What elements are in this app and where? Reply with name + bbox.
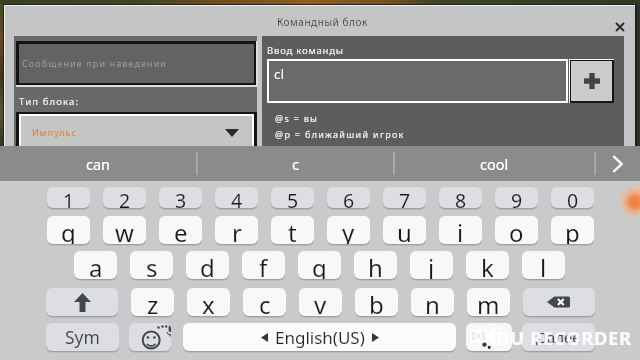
staticText: cool (480, 154, 509, 174)
button[interactable]: b (355, 288, 398, 316)
button[interactable]: l (522, 251, 565, 279)
staticText: k (481, 251, 494, 279)
staticText: Ввод команды (267, 44, 344, 57)
button[interactable]: a (74, 251, 117, 279)
button[interactable]: Backspace (523, 288, 595, 316)
staticText: 5 (287, 187, 299, 208)
button[interactable]: r (215, 216, 258, 244)
button[interactable]: t (271, 216, 314, 244)
button[interactable]: Shift (46, 288, 118, 316)
staticText: 6 (343, 187, 355, 208)
staticText: @s = вы (275, 112, 319, 124)
button[interactable]: u (383, 216, 426, 244)
staticText: g (312, 251, 327, 279)
button[interactable]: w (103, 216, 146, 244)
button[interactable]: i (439, 216, 482, 244)
button[interactable]: 1 (47, 187, 90, 208)
staticText: z (147, 288, 159, 316)
button[interactable]: y (327, 216, 370, 244)
button[interactable]: cool (394, 146, 595, 181)
staticText: DU RECORDER (496, 325, 632, 350)
button[interactable]: . (466, 323, 512, 351)
staticText: n (425, 288, 440, 316)
button[interactable]: English(US) (183, 323, 456, 351)
button[interactable]: q (47, 216, 90, 244)
button[interactable]: 5 (271, 187, 314, 208)
staticText: 4 (231, 187, 243, 208)
staticText: h (368, 251, 383, 279)
button[interactable]: 0 (551, 187, 594, 208)
staticText: q (61, 216, 76, 244)
staticText: can (86, 154, 111, 174)
button[interactable]: c (197, 146, 394, 181)
staticText: 2 (119, 187, 131, 208)
button[interactable]: j (410, 251, 453, 279)
staticText: Импульс (32, 126, 77, 138)
staticText: d (200, 251, 215, 279)
button[interactable]: f (242, 251, 285, 279)
button[interactable]: 3 (159, 187, 202, 208)
button[interactable]: z (131, 288, 174, 316)
staticText: x (202, 288, 215, 316)
button[interactable]: Далее (522, 323, 595, 351)
staticText: b (369, 288, 384, 316)
button[interactable]: m (467, 288, 510, 316)
staticText: 8 (455, 187, 467, 208)
button[interactable]: 7 (383, 187, 426, 208)
staticText: t (288, 216, 297, 244)
staticText: r (232, 216, 242, 244)
button[interactable]: Sym (46, 323, 119, 351)
button[interactable]: More suggestions (595, 146, 640, 181)
button[interactable]: 8 (439, 187, 482, 208)
button[interactable]: Импульс (21, 116, 252, 148)
staticText: s (146, 251, 158, 279)
button[interactable]: Add command (571, 61, 612, 101)
button[interactable]: Close (609, 16, 631, 38)
button[interactable]: 6 (327, 187, 370, 208)
button[interactable]: 9 (495, 187, 538, 208)
button[interactable]: o (495, 216, 538, 244)
staticText: p (565, 216, 580, 244)
staticText: 0 (567, 187, 579, 208)
staticText: 1 (63, 187, 75, 208)
button[interactable]: n (411, 288, 454, 316)
button[interactable]: cl (269, 61, 566, 101)
staticText: m (477, 288, 500, 316)
staticText: Далее (536, 327, 581, 347)
staticText: Sym (65, 325, 100, 349)
button[interactable]: 4 (215, 187, 258, 208)
button[interactable]: Emoji and voice input (129, 323, 171, 351)
staticText: y (342, 216, 355, 244)
staticText: 7 (399, 187, 411, 208)
button[interactable]: h (354, 251, 397, 279)
button[interactable]: can (0, 146, 197, 181)
button[interactable]: e (159, 216, 202, 244)
staticText: f (259, 251, 268, 279)
staticText: . (486, 323, 493, 351)
staticText: a (89, 251, 103, 279)
staticText: 3 (175, 187, 187, 208)
staticText: English(US) (275, 326, 365, 349)
staticText: Тип блока: (19, 95, 80, 108)
staticText: u (397, 216, 412, 244)
button[interactable]: s (130, 251, 173, 279)
staticText: v (314, 288, 327, 316)
button[interactable]: Сообщение при наведении (19, 44, 254, 83)
button[interactable]: d (186, 251, 229, 279)
button[interactable]: 2 (103, 187, 146, 208)
button[interactable]: g (298, 251, 341, 279)
staticText: l (540, 251, 547, 279)
staticText: e (174, 216, 188, 244)
button[interactable]: x (187, 288, 230, 316)
staticText: Сообщение при наведении (22, 57, 168, 69)
staticText: Командный блок (277, 15, 368, 29)
button[interactable]: p (551, 216, 594, 244)
staticText: c (259, 288, 271, 316)
staticText: o (509, 216, 524, 244)
staticText: cl (274, 65, 285, 83)
button[interactable]: c (243, 288, 286, 316)
staticText: i (457, 216, 464, 244)
button[interactable]: v (299, 288, 342, 316)
button[interactable]: k (466, 251, 509, 279)
staticText: j (428, 251, 435, 279)
